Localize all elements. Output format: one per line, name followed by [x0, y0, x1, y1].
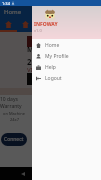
button[interactable]: Connect — [1, 133, 27, 146]
staticText: Home — [45, 42, 60, 49]
staticText: 1:34 — [2, 1, 10, 6]
staticText: Home — [4, 8, 22, 16]
button[interactable]: Tab 0 — [0, 18, 17, 32]
staticText: Help — [45, 64, 56, 71]
staticText: Logout — [45, 75, 62, 82]
staticText: MODEL — [27, 45, 53, 55]
staticText: 10 days Warranty — [0, 96, 28, 110]
button[interactable]: Back — [18, 169, 28, 179]
button[interactable]: Tab 3 — [51, 18, 68, 32]
staticText: Connect — [4, 136, 24, 143]
button[interactable]: Tab 1 — [17, 18, 34, 32]
staticText: on Machine — [3, 111, 25, 116]
button[interactable]: Tab 2 — [34, 18, 51, 32]
staticText: VIEW — [27, 66, 42, 74]
button[interactable]: Home — [32, 40, 101, 51]
staticText: 2 — [27, 56, 32, 67]
staticText: INFOWAY — [34, 21, 58, 28]
staticText: v1.0 — [34, 28, 42, 33]
staticText: My Profile — [45, 53, 69, 60]
button[interactable]: My Profile — [32, 51, 101, 62]
button[interactable]: Help — [32, 62, 101, 73]
staticText: 24x7 — [10, 117, 19, 122]
button[interactable]: Logout — [32, 73, 101, 84]
